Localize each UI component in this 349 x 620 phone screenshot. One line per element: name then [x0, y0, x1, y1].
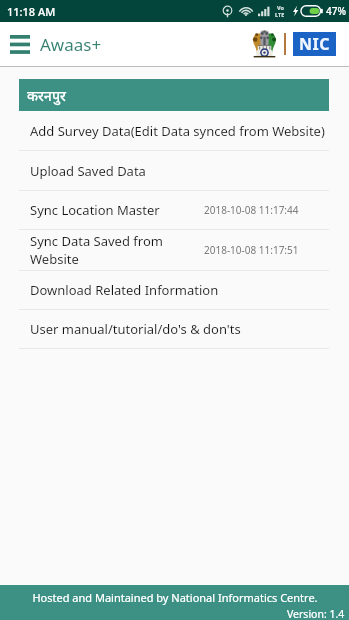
- staticText: 11:18 AM: [7, 4, 56, 19]
- button[interactable]: Add Survey Data(Edit Data synced from We…: [19, 111, 329, 150]
- staticText: NIC: [299, 33, 331, 55]
- staticText: Add Survey Data(Edit Data synced from We…: [30, 122, 326, 140]
- staticText: 2018-10-08 11:17:44: [204, 203, 299, 217]
- staticText: 47%: [326, 4, 346, 18]
- staticText: Version: 1.4: [287, 607, 345, 620]
- button[interactable]: Upload Saved Data: [19, 151, 329, 190]
- staticText: Vo: [277, 4, 284, 11]
- staticText: करनपुर: [27, 86, 66, 105]
- staticText: Upload Saved Data: [30, 162, 326, 180]
- button[interactable]: Sync Location Master: [19, 191, 329, 229]
- staticText: Download Related Information: [30, 281, 326, 299]
- staticText: Sync Location Master: [30, 201, 177, 219]
- staticText: User manual/tutorial/do's & don'ts: [30, 320, 326, 338]
- button[interactable]: Download Related Information: [19, 271, 329, 309]
- button[interactable]: User manual/tutorial/do's & don'ts: [19, 310, 329, 348]
- other: National Emblem of India: [251, 30, 278, 59]
- button[interactable]: Open navigation menu: [3, 24, 37, 64]
- staticText: LTE: [275, 11, 285, 18]
- staticText: Hosted and Maintained by National Inform…: [32, 590, 318, 605]
- staticText: 2018-10-08 11:17:51: [204, 243, 299, 257]
- staticText: Awaas+: [40, 33, 102, 56]
- staticText: Sync Data Saved from Website: [30, 232, 177, 268]
- button[interactable]: Sync Data Saved from Website: [19, 230, 329, 270]
